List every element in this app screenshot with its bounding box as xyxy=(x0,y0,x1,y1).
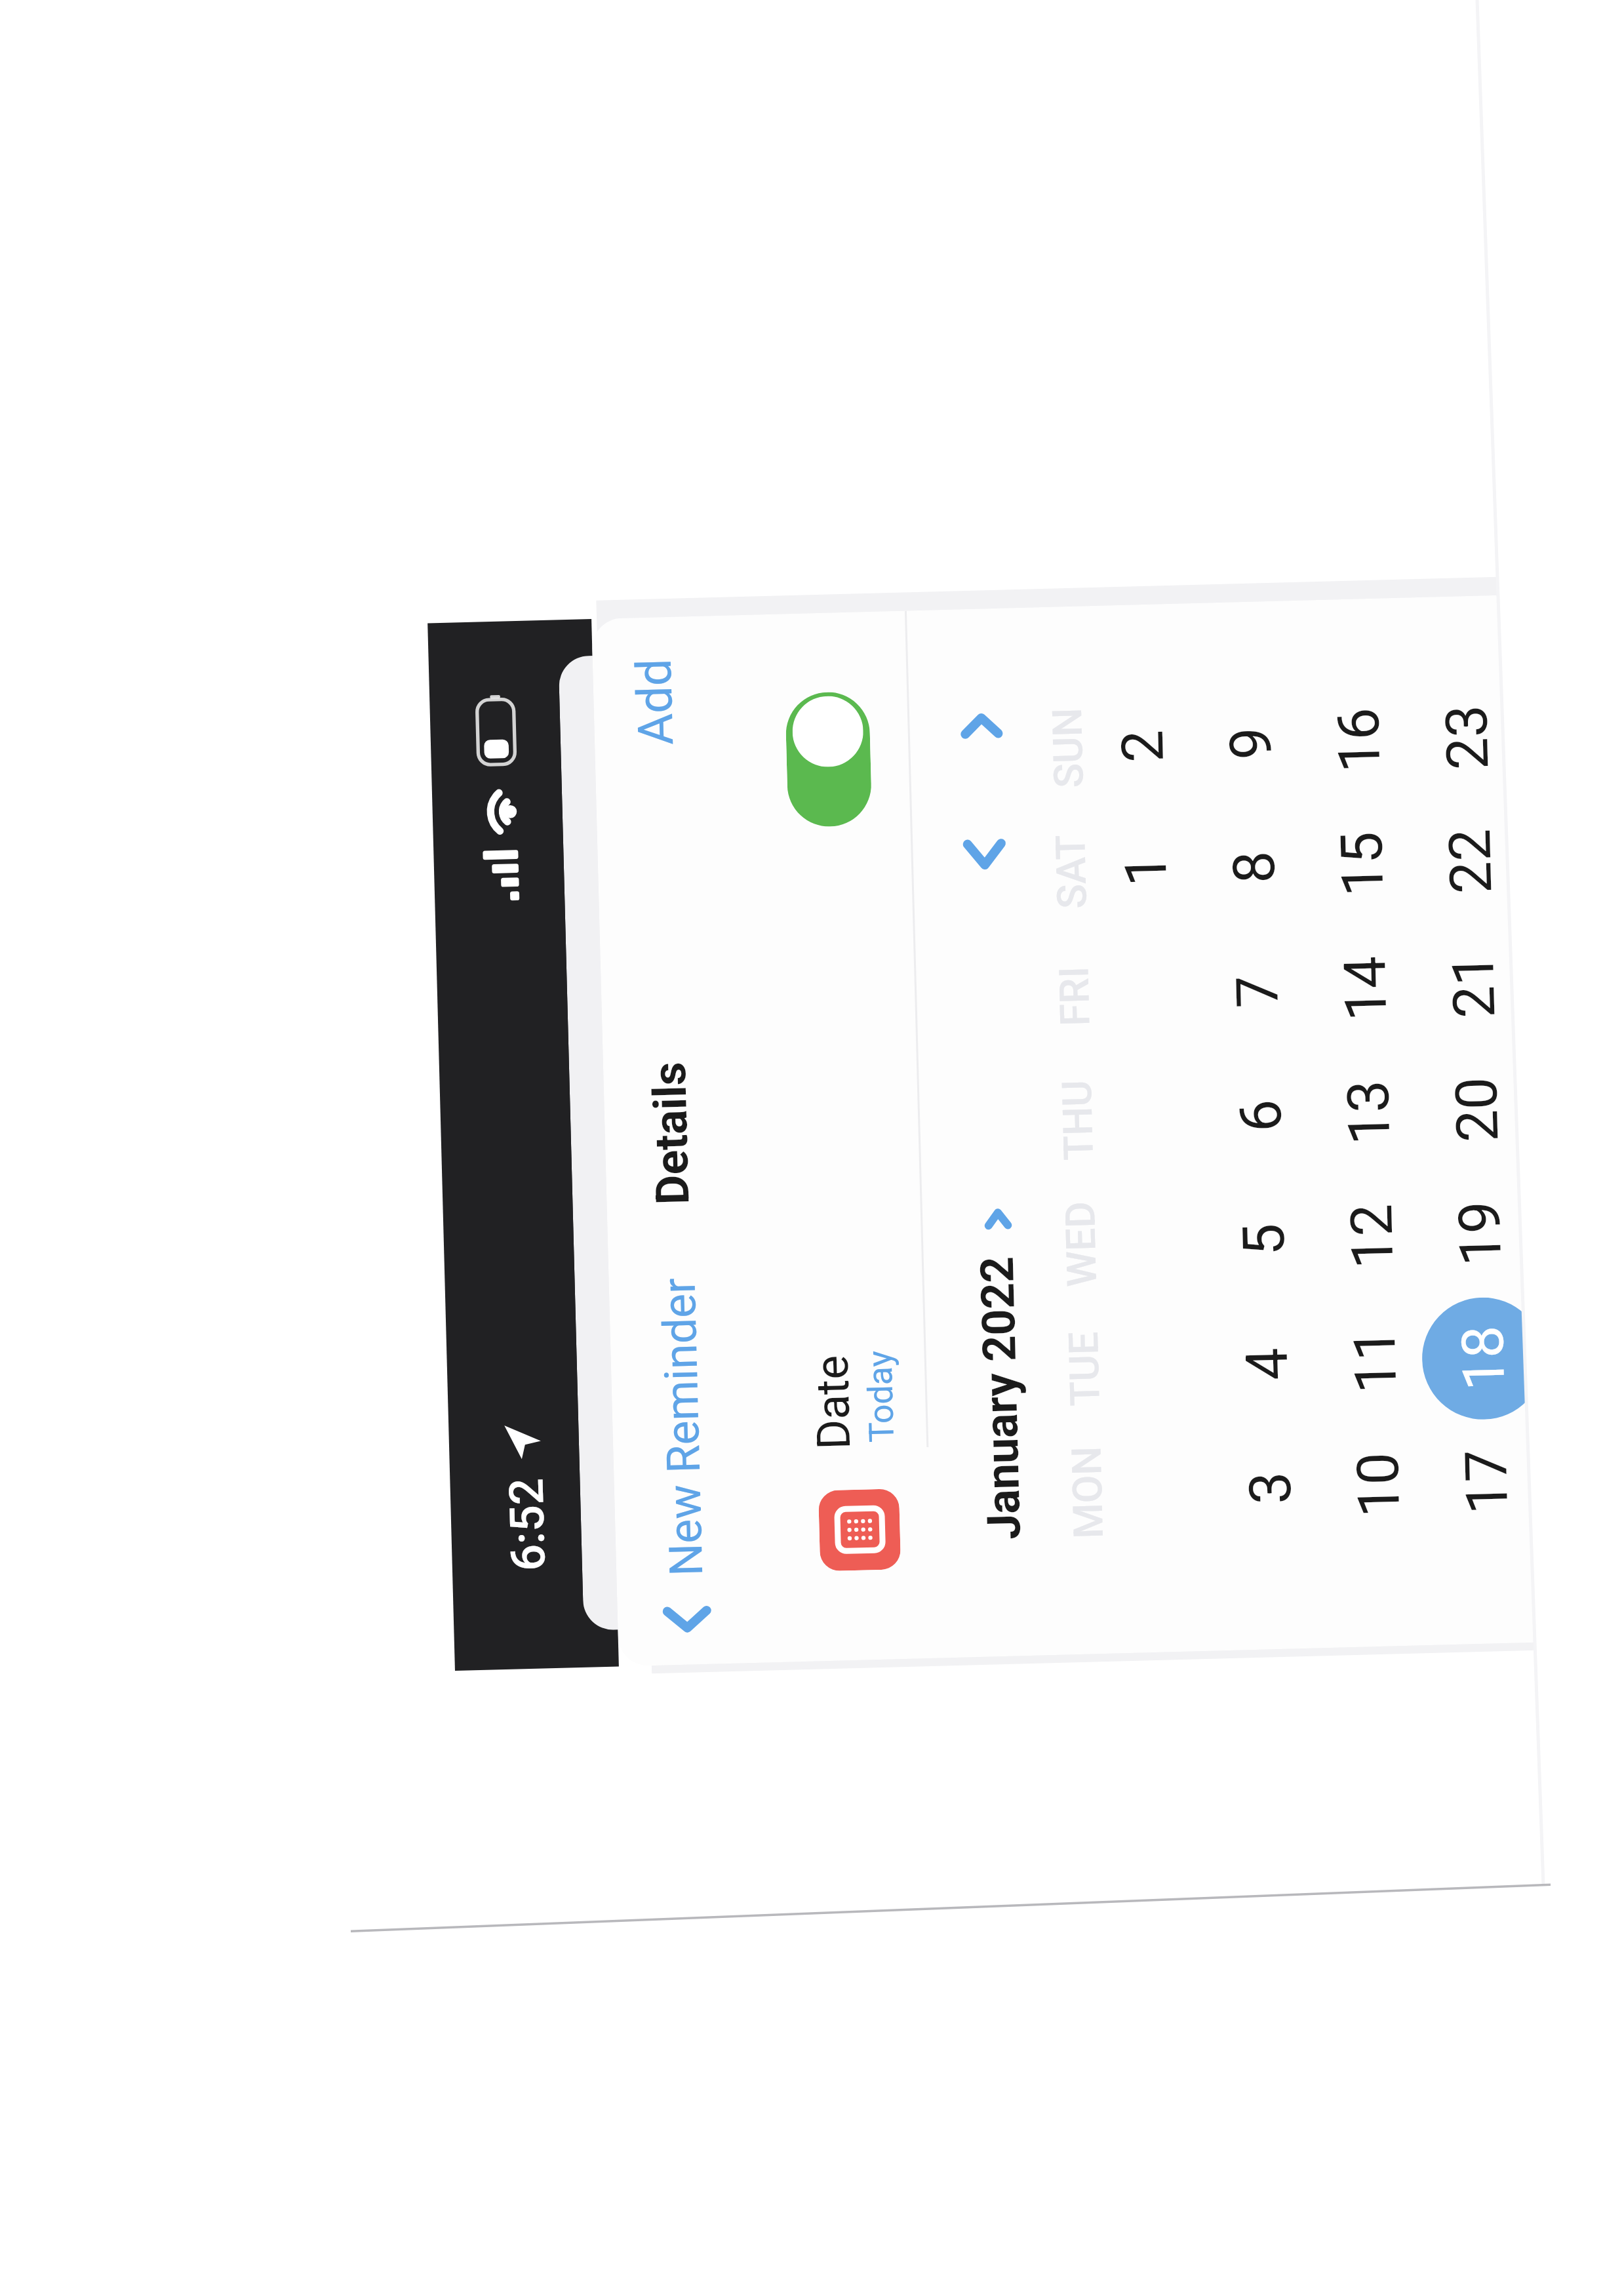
button[interactable]: 8 xyxy=(1191,805,1316,930)
staticText: 14 xyxy=(1331,955,1400,1022)
staticText: 23 xyxy=(1433,704,1502,771)
staticText: TUE xyxy=(1059,1331,1109,1407)
button[interactable] xyxy=(959,1192,1051,1548)
staticText: 6 xyxy=(1226,1098,1295,1133)
button[interactable]: 14 xyxy=(1303,926,1428,1052)
staticText: 18 xyxy=(1449,1325,1518,1391)
other: Location in use xyxy=(504,1425,541,1460)
staticText: 17 xyxy=(1452,1449,1521,1515)
staticText: 21 xyxy=(1439,952,1508,1019)
staticText: 11 xyxy=(1341,1328,1410,1394)
staticText: 13 xyxy=(1334,1079,1403,1146)
staticText: WED xyxy=(1056,1201,1106,1288)
button[interactable]: 7 xyxy=(1194,929,1320,1054)
button[interactable]: 17 xyxy=(1424,1420,1549,1545)
staticText: Details xyxy=(642,1061,700,1205)
button[interactable]: 5 xyxy=(1201,1177,1326,1302)
button[interactable]: 1 xyxy=(1083,808,1208,933)
staticText: 2 xyxy=(1109,729,1177,764)
staticText: 15 xyxy=(1328,831,1397,897)
staticText: 1 xyxy=(1112,853,1180,887)
button[interactable]: 4 xyxy=(1204,1302,1329,1427)
staticText: 20 xyxy=(1442,1076,1512,1143)
staticText: 7 xyxy=(1223,975,1292,1009)
staticText: January 2022 xyxy=(970,1256,1031,1540)
button[interactable]: 10 xyxy=(1316,1423,1441,1548)
button[interactable] xyxy=(762,611,928,1662)
button[interactable]: 3 xyxy=(1207,1426,1333,1551)
staticText: 10 xyxy=(1344,1452,1413,1518)
staticText: 6:52 xyxy=(499,1477,556,1572)
staticText: 5 xyxy=(1230,1222,1298,1257)
staticText: 8 xyxy=(1220,850,1288,885)
button[interactable]: Date enabled xyxy=(785,691,872,828)
staticText: 22 xyxy=(1436,828,1505,895)
staticText: 16 xyxy=(1324,707,1394,774)
staticText: Add xyxy=(625,658,685,746)
button[interactable]: 23 xyxy=(1404,675,1529,800)
button[interactable]: 19 xyxy=(1417,1171,1542,1297)
button[interactable]: 22 xyxy=(1408,799,1533,924)
staticText: 3 xyxy=(1236,1471,1305,1505)
staticText: 19 xyxy=(1446,1200,1515,1267)
staticText: New Reminder xyxy=(652,1277,714,1577)
button[interactable]: 13 xyxy=(1306,1050,1431,1175)
staticText: THU xyxy=(1053,1079,1103,1161)
button[interactable]: Next month xyxy=(932,688,1031,765)
button[interactable]: 12 xyxy=(1309,1174,1434,1299)
staticText: FRI xyxy=(1050,966,1099,1027)
staticText: 12 xyxy=(1337,1203,1407,1270)
button[interactable]: 6 xyxy=(1198,1053,1323,1178)
staticText: MON xyxy=(1062,1446,1113,1539)
button[interactable]: New Reminder xyxy=(644,1241,743,1637)
button[interactable]: 2 xyxy=(1080,684,1205,809)
staticText: Today xyxy=(860,1350,902,1443)
button[interactable]: Add xyxy=(615,626,716,757)
button[interactable]: 16 xyxy=(1296,678,1421,803)
button[interactable]: 20 xyxy=(1414,1048,1539,1173)
staticText: 4 xyxy=(1233,1347,1301,1381)
staticText: SAT xyxy=(1046,834,1096,909)
button[interactable]: 21 xyxy=(1411,924,1536,1049)
staticText: Date xyxy=(805,1354,861,1450)
button[interactable]: 9 xyxy=(1188,681,1313,806)
staticText: SUN xyxy=(1043,707,1093,789)
button[interactable]: 15 xyxy=(1299,802,1424,927)
button[interactable]: Previous month xyxy=(935,811,1034,899)
button[interactable]: 11 xyxy=(1312,1299,1437,1424)
staticText: 9 xyxy=(1217,726,1285,761)
button[interactable]: 18 xyxy=(1421,1296,1546,1421)
